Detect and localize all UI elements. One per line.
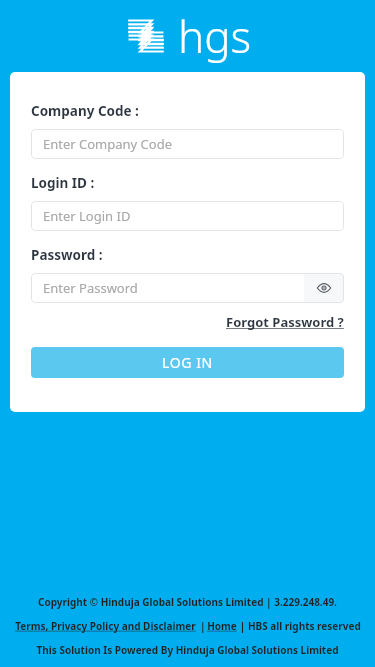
staticText: Terms, Privacy Policy and Disclaimer [15, 619, 196, 633]
staticText: Company Code : [31, 102, 139, 120]
staticText: Enter Company Code [43, 135, 173, 153]
staticText: Password : [31, 246, 103, 264]
button[interactable]: Show password [304, 273, 344, 303]
staticText: This Solution Is Powered By Hinduja Glob… [12, 643, 363, 657]
button[interactable]: Terms, Privacy Policy and Disclaimer [15, 619, 196, 633]
button[interactable]: Enter Login ID [31, 201, 344, 231]
staticText: Copyright © Hinduja Global Solutions Lim… [12, 595, 363, 609]
button[interactable]: LOG IN [31, 347, 344, 378]
staticText: | [196, 619, 207, 633]
staticText: Enter Login ID [43, 207, 131, 225]
button[interactable]: Enter Password [31, 273, 304, 303]
staticText: Enter Password [43, 279, 138, 297]
staticText: Login ID : [31, 174, 95, 192]
staticText: hgs [178, 6, 252, 66]
button[interactable]: Forgot Password ? [226, 311, 344, 333]
staticText: Forgot Password ? [226, 313, 344, 331]
staticText: LOG IN [162, 353, 213, 372]
button[interactable]: Enter Company Code [31, 129, 344, 159]
staticText: Home [207, 619, 237, 633]
button[interactable]: Home [207, 619, 237, 633]
staticText: | HBS all rights reserved [237, 619, 361, 633]
